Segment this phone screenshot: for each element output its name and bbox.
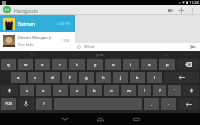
staticText: What <box>84 44 95 50</box>
staticText: l <box>154 75 156 81</box>
staticText: 12:38 PM <box>57 22 70 26</box>
button[interactable]: Enter <box>164 72 199 83</box>
staticText: c <box>59 88 62 94</box>
staticText: q <box>7 62 10 68</box>
button[interactable]: t <box>69 59 85 70</box>
staticText: you <box>96 52 104 58</box>
staticText: o <box>148 62 151 68</box>
staticText: ?123 <box>5 102 12 106</box>
button[interactable]: Home <box>90 113 110 125</box>
staticText: v <box>76 88 79 94</box>
staticText: k <box>136 75 139 81</box>
staticText: g <box>85 75 88 81</box>
staticText: Batman <box>18 21 35 27</box>
button[interactable]: / <box>36 98 52 110</box>
button[interactable]: w <box>18 59 33 70</box>
button[interactable]: z <box>20 85 34 96</box>
staticText: / <box>43 101 45 107</box>
staticText: j <box>120 75 122 81</box>
staticText: Dexter Morgan Jr <box>18 35 52 41</box>
staticText: i <box>130 62 132 68</box>
button[interactable]: ! <box>138 85 151 96</box>
button[interactable]: h <box>96 72 111 83</box>
button[interactable]: Back <box>55 113 75 125</box>
button[interactable]: p <box>159 59 175 70</box>
button[interactable]: ’ <box>168 85 181 96</box>
button[interactable]: Backspace <box>177 59 199 70</box>
button[interactable]: Shift <box>183 85 199 96</box>
button[interactable]: d <box>45 72 60 83</box>
button[interactable]: m <box>121 85 136 96</box>
staticText: hi <box>31 52 35 57</box>
staticText: e <box>41 62 44 68</box>
staticText: 11:38 <box>189 0 199 5</box>
button[interactable]: e <box>35 59 50 70</box>
button[interactable]: . <box>161 98 176 110</box>
staticText: 12:06 <box>62 39 70 43</box>
staticText: is <box>165 52 168 57</box>
button[interactable]: a <box>11 72 26 83</box>
button[interactable]: x <box>36 85 51 96</box>
staticText: z <box>26 88 28 94</box>
button[interactable]: Send <box>187 43 199 51</box>
staticText: s <box>34 75 37 81</box>
button[interactable]: y <box>87 59 103 70</box>
button[interactable]: What <box>75 43 200 51</box>
staticText: b <box>93 88 96 94</box>
button[interactable]: you <box>66 51 133 58</box>
button[interactable]: r <box>52 59 67 70</box>
staticText: u <box>112 62 115 68</box>
button[interactable]: Voice input <box>18 98 34 110</box>
button[interactable]: , <box>144 98 159 110</box>
button[interactable]: ? <box>153 85 166 96</box>
button[interactable]: l <box>147 72 162 83</box>
staticText: d <box>51 75 54 81</box>
button[interactable]: New conversation <box>177 5 186 15</box>
staticText: t <box>76 62 78 68</box>
staticText: Hangouts <box>14 7 38 14</box>
button[interactable]: v <box>70 85 85 96</box>
button[interactable]: Recent apps <box>126 113 146 125</box>
staticText: m <box>127 88 131 94</box>
staticText: ? <box>159 88 161 94</box>
staticText: p <box>166 62 169 68</box>
staticText: r <box>59 62 61 68</box>
staticText: y <box>94 62 97 68</box>
button[interactable]: ?123 <box>1 98 16 110</box>
staticText: n <box>110 88 113 94</box>
button[interactable]: u <box>105 59 121 70</box>
button[interactable]: Batman <box>0 15 75 32</box>
staticText: h <box>102 75 105 81</box>
button[interactable]: f <box>62 72 77 83</box>
button[interactable]: n <box>104 85 119 96</box>
button[interactable]: s <box>28 72 43 83</box>
staticText: ! <box>144 88 146 94</box>
button[interactable]: Enter <box>178 98 199 110</box>
button[interactable]: Shift <box>1 85 18 96</box>
staticText: a <box>17 75 20 81</box>
button[interactable]: Dexter Morgan Jr <box>0 32 75 49</box>
button[interactable]: Video call <box>166 5 175 15</box>
button[interactable]: q <box>1 59 16 70</box>
button[interactable]: o <box>141 59 157 70</box>
button[interactable]: j <box>113 72 128 83</box>
staticText: , <box>151 101 153 107</box>
staticText: f <box>69 75 71 81</box>
staticText: . <box>168 101 170 107</box>
button[interactable]: g <box>79 72 94 83</box>
button[interactable]: i <box>123 59 139 70</box>
staticText: w <box>24 62 28 68</box>
staticText: x <box>42 88 45 94</box>
button[interactable]: c <box>53 85 68 96</box>
staticText: You: hello <box>18 42 34 47</box>
button[interactable]: More options <box>188 5 197 15</box>
staticText: ’ <box>174 88 175 94</box>
button[interactable]: b <box>87 85 102 96</box>
button[interactable]: k <box>130 72 145 83</box>
